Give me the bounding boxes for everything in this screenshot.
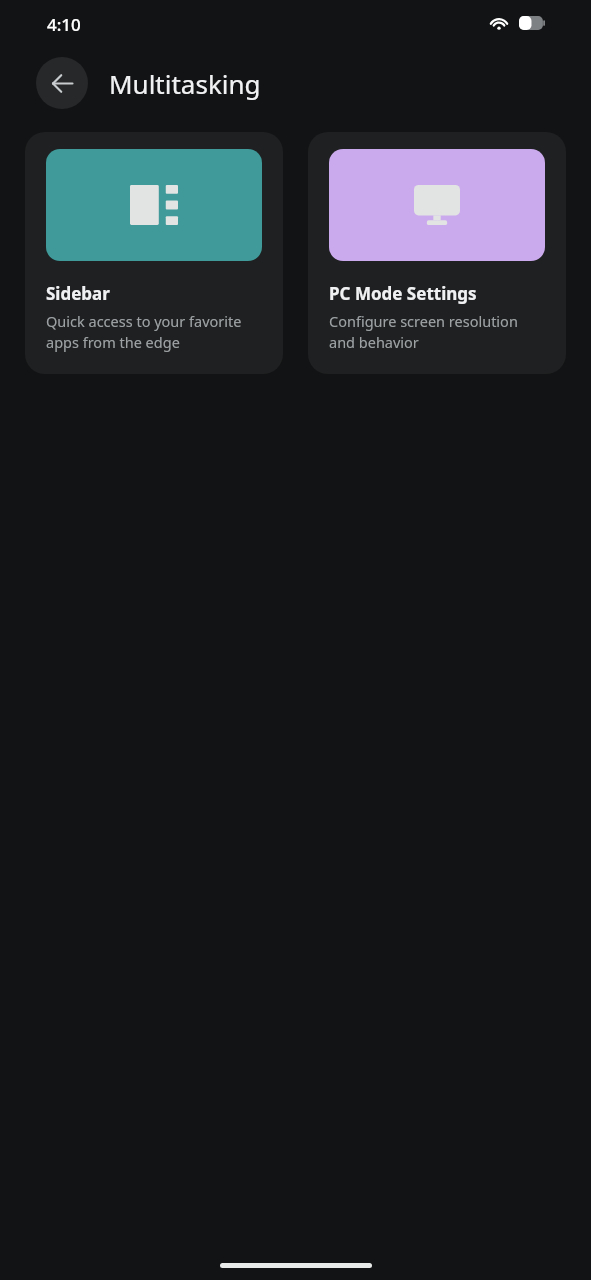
staticText: Configure screen resolution and behavior [329, 311, 545, 353]
staticText: Sidebar [46, 282, 110, 305]
staticText: Multitasking [109, 66, 261, 101]
staticText: Quick access to your favorite apps from … [46, 311, 262, 353]
staticText: PC Mode Settings [329, 282, 477, 305]
staticText: 4:10 [47, 13, 81, 36]
button[interactable]: Sidebar [25, 132, 283, 374]
button[interactable]: Back [36, 57, 88, 109]
button[interactable]: PC Mode Settings [308, 132, 566, 374]
